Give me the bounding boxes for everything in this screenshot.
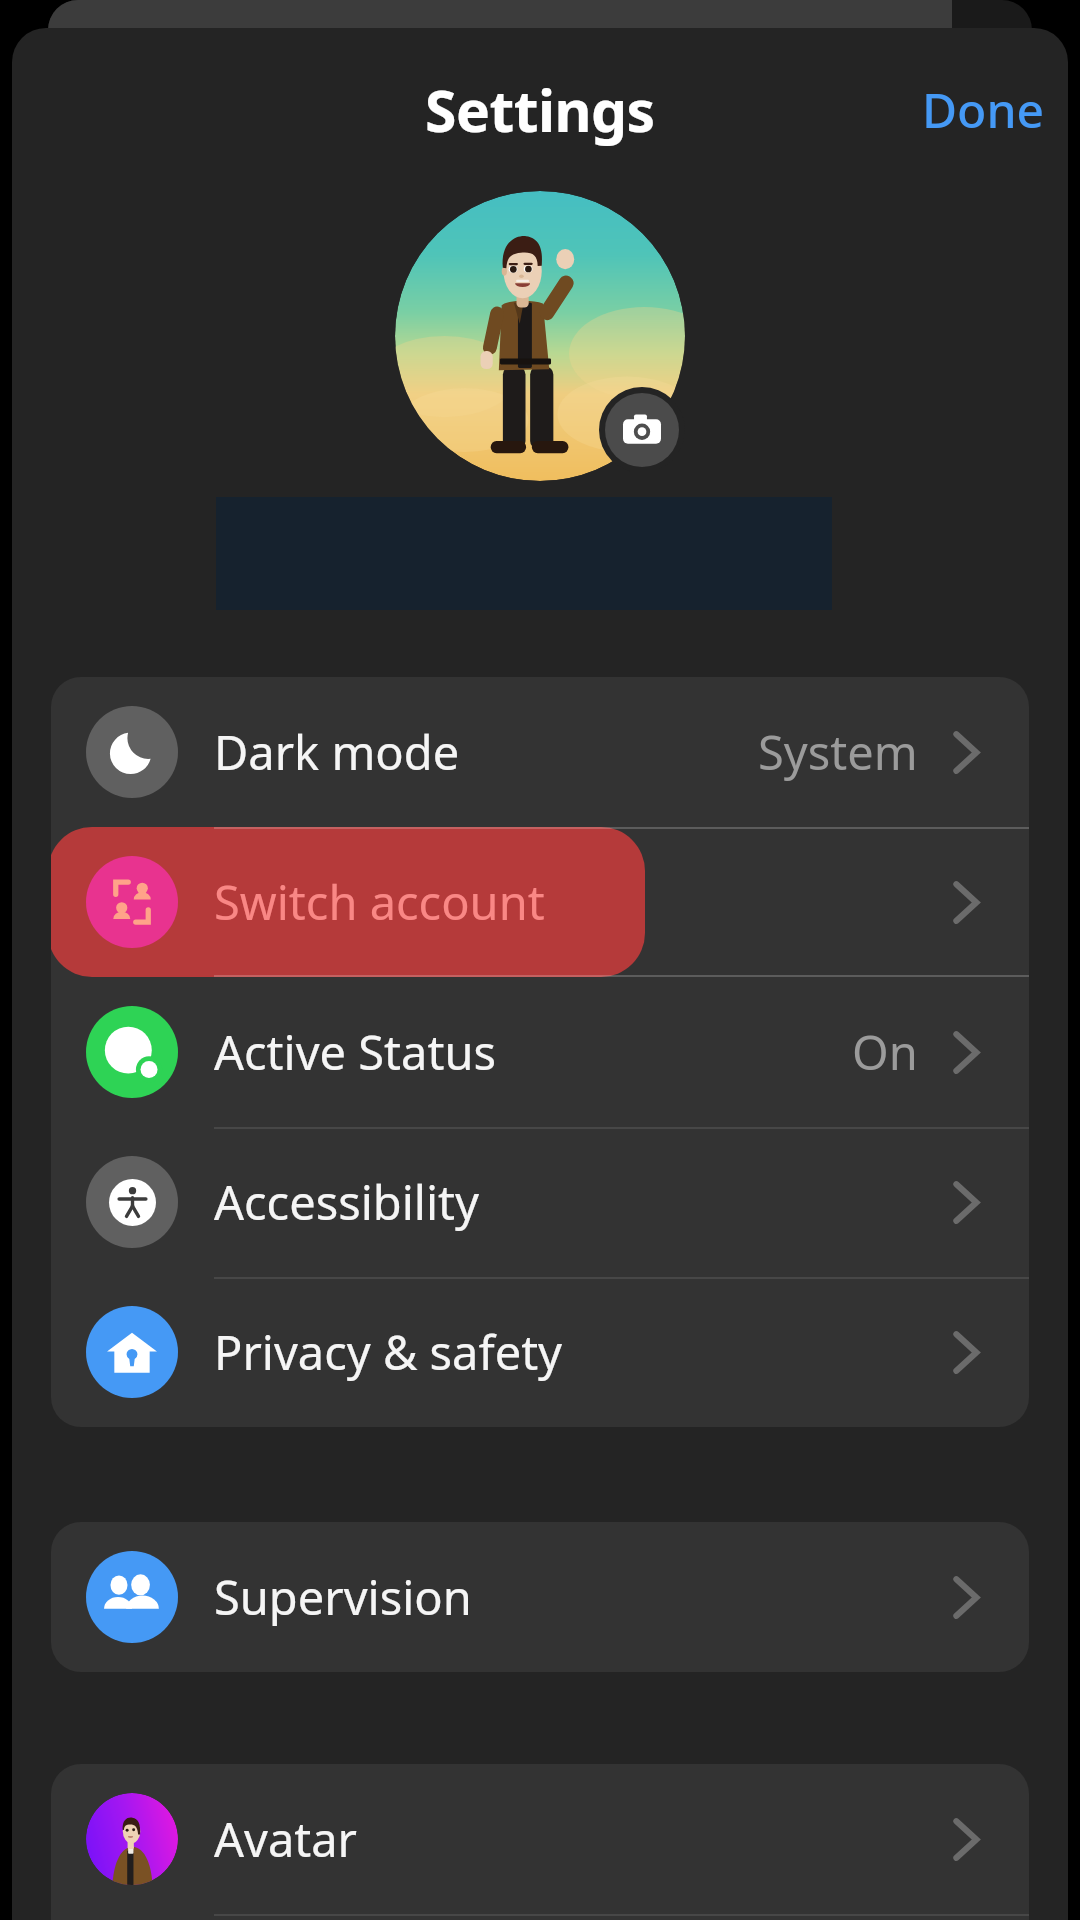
staticText: Active Status [214, 1020, 496, 1084]
staticText: Privacy & safety [214, 1320, 563, 1384]
button[interactable]: Privacy & safety [51, 1277, 1029, 1427]
button[interactable]: Switch account [51, 827, 1029, 977]
button[interactable]: Supervision [51, 1522, 1029, 1672]
staticText: Done [922, 77, 1045, 142]
button[interactable]: Active Status [51, 977, 1029, 1127]
button[interactable]: Done [892, 61, 1068, 158]
staticText: Supervision [214, 1565, 472, 1629]
button[interactable]: Dark mode [51, 677, 1029, 827]
staticText: Dark mode [214, 720, 460, 784]
staticText: Accessibility [214, 1170, 480, 1234]
button[interactable]: Change profile photo [599, 387, 685, 473]
button[interactable]: Avatar [51, 1764, 1029, 1914]
staticText: Avatar [214, 1807, 358, 1871]
staticText: On [852, 1020, 918, 1084]
button[interactable]: Accessibility [51, 1127, 1029, 1277]
staticText: Settings [425, 71, 655, 149]
staticText: System [758, 720, 918, 784]
staticText: Switch account [214, 870, 545, 934]
